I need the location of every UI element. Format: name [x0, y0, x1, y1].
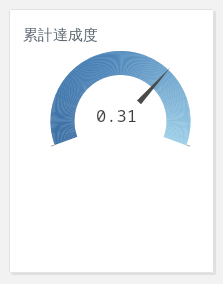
button[interactable]: 累計達成度 [9, 9, 214, 273]
other: 累計達成度ゲージ 0.31 [9, 45, 214, 225]
staticText: 0.31 [96, 104, 137, 127]
staticText: 累計達成度 [23, 26, 98, 45]
